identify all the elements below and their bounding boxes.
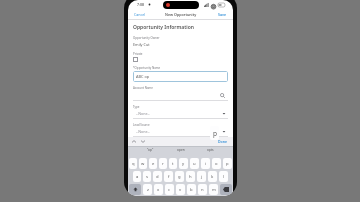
button[interactable]: i (201, 158, 210, 169)
staticText: opts (207, 148, 214, 152)
button[interactable]: z (143, 184, 152, 195)
staticText: Opportunity Owner (133, 36, 160, 40)
staticText: z (147, 187, 149, 193)
button[interactable]: Cancel (132, 11, 148, 18)
staticText: g (178, 174, 181, 180)
staticText: d (156, 174, 159, 180)
staticText: u (193, 161, 196, 167)
staticText: j (201, 174, 203, 180)
staticText: b (190, 187, 193, 193)
button[interactable]: m (209, 184, 218, 195)
staticText: o (215, 161, 218, 167)
button[interactable]: t (169, 158, 177, 169)
staticText: c (168, 187, 171, 193)
staticText: --None-- (136, 111, 150, 116)
button[interactable]: Next field (141, 140, 145, 143)
button[interactable]: Delete (220, 184, 232, 195)
button[interactable]: e (149, 158, 157, 169)
button[interactable]: y (179, 158, 188, 169)
button[interactable]: w (139, 158, 147, 169)
staticText: q (132, 161, 135, 167)
staticText: Opportunity Information (133, 24, 194, 31)
button[interactable]: p (223, 158, 232, 169)
button[interactable]: "op" (144, 147, 157, 153)
staticText: m (212, 187, 216, 193)
staticText: *Opportunity Name (133, 66, 161, 70)
button[interactable]: d (153, 171, 162, 182)
staticText: Private (133, 52, 143, 56)
staticText: Done (218, 139, 228, 144)
button[interactable]: o (212, 158, 221, 169)
button[interactable]: g (175, 171, 184, 182)
staticText: f (168, 174, 170, 180)
button[interactable]: v (176, 184, 185, 195)
button[interactable]: b (187, 184, 196, 195)
button[interactable]: s (143, 171, 151, 182)
button[interactable]: r (159, 158, 167, 169)
button[interactable]: x (154, 184, 163, 195)
staticText: i (205, 161, 207, 167)
staticText: Type (133, 105, 140, 109)
staticText: x (157, 187, 160, 193)
staticText: Save (218, 12, 227, 17)
button[interactable]: a (133, 171, 141, 182)
staticText: p (213, 129, 217, 138)
staticText: p (226, 161, 229, 167)
staticText: Account Name (133, 86, 153, 90)
staticText: Lead Source (133, 123, 150, 127)
staticText: Emily Cut (133, 42, 150, 47)
staticText: ABC op (136, 74, 150, 79)
button[interactable]: Shift (129, 184, 141, 195)
button[interactable]: Private checkbox (133, 57, 138, 62)
button[interactable]: q (129, 158, 137, 169)
button[interactable]: k (208, 171, 217, 182)
button[interactable]: l (219, 171, 228, 182)
staticText: s (146, 174, 149, 180)
button[interactable]: Done (217, 139, 229, 144)
button[interactable]: u (190, 158, 199, 169)
staticText: e (152, 161, 155, 167)
button[interactable]: c (165, 184, 174, 195)
staticText: r (162, 161, 164, 167)
button[interactable]: h (186, 171, 195, 182)
staticText: open (177, 148, 185, 152)
staticText: y (182, 161, 185, 167)
staticText: --None-- (136, 129, 150, 134)
staticText: n (201, 187, 204, 193)
staticText: h (189, 174, 192, 180)
button[interactable]: Previous field (132, 140, 136, 143)
staticText: l (223, 174, 225, 180)
button[interactable]: n (198, 184, 207, 195)
staticText: k (211, 174, 214, 180)
button[interactable]: --None-- (133, 127, 228, 136)
button[interactable]: ABC op (133, 71, 228, 82)
staticText: v (179, 187, 182, 193)
button[interactable]: Save (216, 11, 229, 18)
staticText: a (136, 174, 139, 180)
staticText: t (172, 161, 174, 167)
staticText: w (141, 161, 145, 167)
button[interactable]: open (174, 147, 188, 153)
staticText: "op" (147, 148, 154, 152)
button[interactable]: opts (204, 147, 217, 153)
staticText: New Opportunity (165, 12, 197, 17)
button[interactable]: j (197, 171, 206, 182)
button[interactable]: --None-- (133, 109, 228, 118)
other: Search account (220, 93, 225, 98)
button[interactable]: Search account (133, 90, 228, 100)
button[interactable]: f (164, 171, 173, 182)
staticText: Cancel (134, 12, 146, 17)
staticText: 7:08 (137, 2, 144, 7)
